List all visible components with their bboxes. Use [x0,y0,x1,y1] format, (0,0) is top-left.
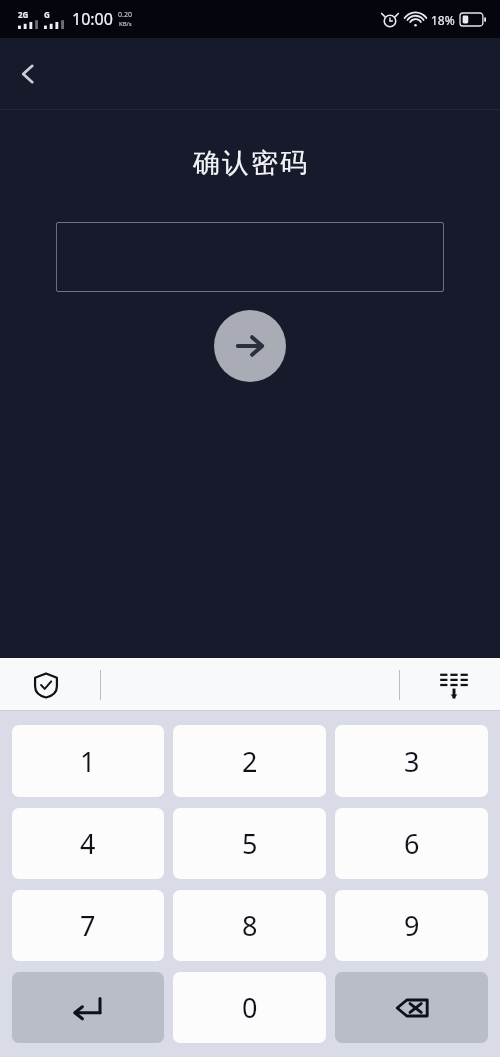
staticText: G [44,9,50,20]
button[interactable]: 6 [335,808,488,879]
button[interactable]: 9 [335,890,488,961]
button[interactable]: 7 [12,890,164,961]
button[interactable] [56,222,444,292]
button[interactable]: Submit [214,310,286,382]
button[interactable]: 1 [12,725,164,797]
staticText: 9 [404,907,420,944]
staticText: 10:00 [72,8,113,30]
button[interactable]: 4 [12,808,164,879]
staticText: 1 [80,743,96,780]
button[interactable]: Hide keyboard [432,663,476,707]
button[interactable]: Delete [335,972,488,1043]
button[interactable]: 5 [173,808,326,879]
button[interactable]: 2 [173,725,326,797]
button[interactable]: Back [0,46,56,102]
staticText: KB/s [119,20,132,28]
staticText: 5 [242,825,258,862]
staticText: 2 [242,743,258,780]
staticText: 0 [242,989,258,1026]
staticText: 18% [431,12,455,28]
button[interactable]: 3 [335,725,488,797]
staticText: 4 [80,825,96,862]
staticText: 确认密码 [192,146,308,180]
staticText: 8 [242,907,258,944]
staticText: 0.20 [118,10,132,20]
button[interactable]: Secure input [24,663,68,707]
staticText: 3 [404,743,420,780]
staticText: 6 [404,825,420,862]
button[interactable]: 8 [173,890,326,961]
staticText: 7 [80,907,96,944]
staticText: 2G [18,9,29,20]
button[interactable]: Enter [12,972,164,1043]
button[interactable]: 0 [173,972,326,1043]
